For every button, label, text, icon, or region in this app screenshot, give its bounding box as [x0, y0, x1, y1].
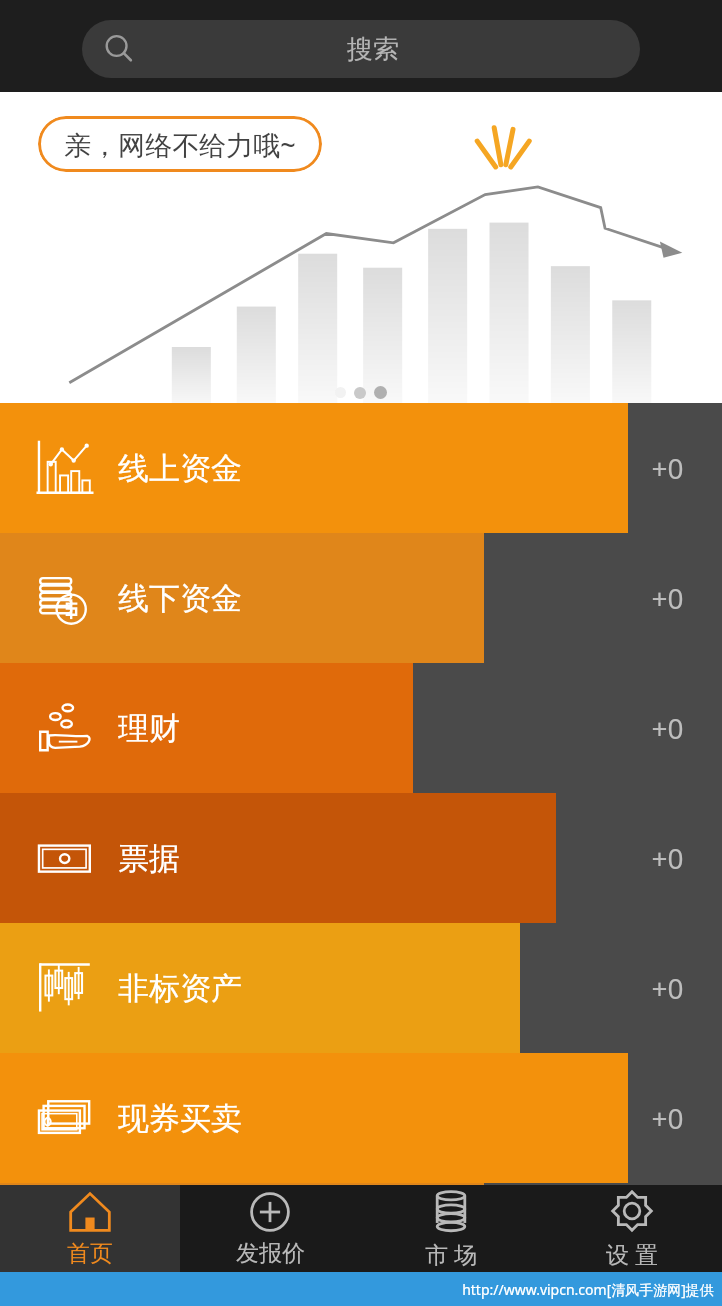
- staticText: +0: [651, 709, 684, 747]
- button[interactable]: 发报价: [180, 1185, 360, 1272]
- button[interactable]: 票据: [0, 793, 722, 923]
- staticText: 市 场: [425, 1238, 477, 1269]
- button[interactable]: [0, 1183, 722, 1185]
- button[interactable]: 亲，网络不给力哦~: [38, 116, 322, 172]
- staticText: 现券买卖: [118, 1099, 242, 1138]
- staticText: +0: [651, 449, 684, 487]
- staticText: +0: [651, 969, 684, 1007]
- staticText: 发报价: [236, 1239, 305, 1268]
- staticText: +0: [651, 839, 684, 877]
- staticText: +0: [651, 579, 684, 617]
- staticText: 非标资产: [118, 969, 242, 1008]
- button[interactable]: 线下资金: [0, 533, 722, 663]
- staticText: 搜索: [347, 33, 399, 66]
- button[interactable]: 市 场: [360, 1185, 541, 1272]
- button[interactable]: 线上资金: [0, 403, 722, 533]
- button[interactable]: 首页: [0, 1185, 180, 1272]
- staticText: 设 置: [606, 1238, 658, 1269]
- staticText: +0: [651, 1099, 684, 1137]
- staticText: 线下资金: [118, 579, 242, 618]
- button[interactable]: 搜索: [82, 20, 640, 78]
- staticText: 线上资金: [118, 449, 242, 488]
- staticText: 票据: [118, 839, 180, 878]
- button[interactable]: 理财: [0, 663, 722, 793]
- staticText: 首页: [67, 1239, 113, 1268]
- staticText: http://www.vipcn.com[清风手游网]提供: [462, 1280, 714, 1299]
- button[interactable]: 设 置: [541, 1185, 722, 1272]
- button[interactable]: 非标资产: [0, 923, 722, 1053]
- staticText: 理财: [118, 709, 180, 748]
- button[interactable]: 现券买卖: [0, 1053, 722, 1183]
- staticText: 亲，网络不给力哦~: [64, 126, 296, 163]
